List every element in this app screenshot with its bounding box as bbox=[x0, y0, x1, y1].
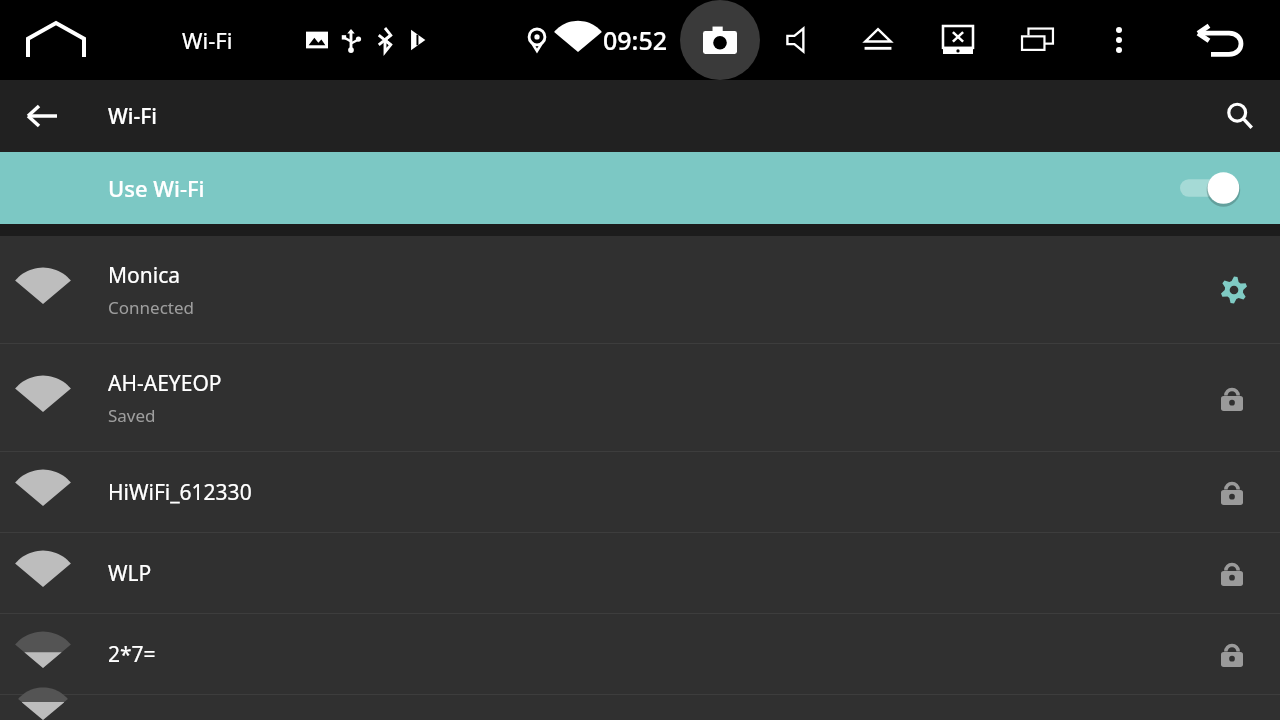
staticText: HiWiFi_612330 bbox=[108, 478, 252, 507]
staticText: AH-AEYEOP bbox=[108, 369, 222, 398]
staticText: Use Wi-Fi bbox=[108, 173, 205, 203]
button[interactable]: 2*7= bbox=[0, 614, 1280, 694]
button[interactable]: Recents bbox=[1016, 18, 1060, 62]
staticText: Connected bbox=[108, 296, 194, 319]
button[interactable]: Use Wi-Fi bbox=[0, 152, 1280, 224]
button[interactable]: Network settings bbox=[1212, 268, 1256, 312]
staticText: Wi-Fi bbox=[182, 25, 233, 55]
button[interactable]: Navigate up bbox=[16, 90, 68, 142]
button[interactable]: Close bbox=[936, 18, 980, 62]
button[interactable]: Home bbox=[20, 4, 92, 76]
staticText: 09:52 bbox=[603, 23, 668, 57]
button[interactable]: Monica bbox=[0, 236, 1280, 343]
staticText: Wi-Fi bbox=[108, 102, 157, 131]
button[interactable]: Volume bbox=[778, 18, 822, 62]
button[interactable]: Screenshot camera bbox=[680, 0, 760, 80]
button[interactable]: WLP bbox=[0, 533, 1280, 613]
button[interactable]: More options bbox=[1098, 19, 1140, 61]
button[interactable]: Back bbox=[1190, 9, 1252, 71]
button[interactable]: Use Wi-Fi toggle, on bbox=[1180, 166, 1248, 210]
button[interactable] bbox=[0, 695, 1280, 720]
staticText: WLP bbox=[108, 559, 152, 588]
staticText: Saved bbox=[108, 404, 156, 427]
staticText: Monica bbox=[108, 261, 181, 290]
button[interactable]: AH-AEYEOP bbox=[0, 344, 1280, 451]
staticText: 2*7= bbox=[108, 640, 156, 669]
button[interactable]: Search bbox=[1214, 90, 1266, 142]
button[interactable]: Eject bbox=[856, 18, 900, 62]
button[interactable]: HiWiFi_612330 bbox=[0, 452, 1280, 532]
